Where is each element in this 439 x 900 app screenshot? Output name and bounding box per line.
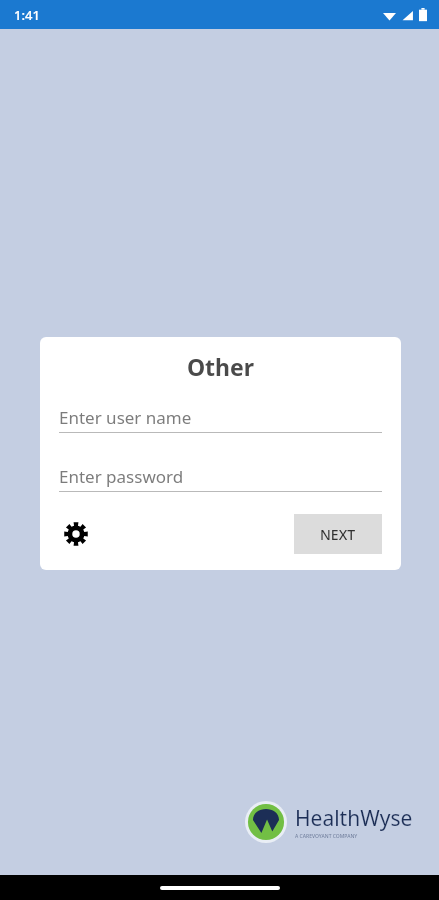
staticText: Other	[59, 351, 382, 382]
button[interactable]: NEXT	[294, 514, 382, 554]
button[interactable]: Enter password	[59, 461, 382, 492]
staticText: Enter user name	[59, 406, 192, 429]
staticText: NEXT	[320, 525, 356, 544]
staticText: 1:41	[14, 6, 40, 24]
staticText: A CAREVOYANT COMPANY	[295, 833, 358, 840]
staticText: Enter password	[59, 465, 184, 488]
button[interactable]: Enter user name	[59, 402, 382, 433]
button[interactable]: Settings	[59, 517, 93, 551]
staticText: HealthWyse	[295, 804, 413, 833]
